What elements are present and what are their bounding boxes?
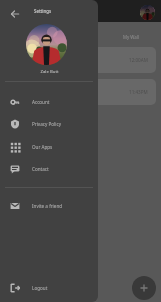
button[interactable]: Logout [0, 278, 98, 298]
button[interactable]: Privacy Policy [0, 114, 98, 134]
button[interactable]: Back [5, 4, 25, 24]
button[interactable]: Our Apps [0, 137, 98, 157]
staticText: Invite a friend [32, 203, 63, 209]
staticText: 11:43PM [129, 89, 148, 95]
button[interactable]: 12:00AM [50, 47, 156, 73]
staticText: Settings [34, 8, 52, 14]
staticText: Logout [32, 285, 48, 291]
staticText: Privacy Policy [32, 121, 61, 127]
staticText: Zale Butt [40, 68, 59, 74]
button[interactable]: My Wall [100, 28, 161, 45]
button[interactable]: Add [132, 276, 156, 300]
button[interactable]: 11:43PM [50, 79, 156, 105]
staticText: Account [32, 99, 50, 105]
button[interactable]: Invite a friend [0, 196, 98, 216]
staticText: My Wall [123, 34, 140, 40]
staticText: 12:00AM [129, 57, 148, 63]
button[interactable]: Profile [140, 5, 155, 20]
button[interactable]: Contact [0, 159, 98, 179]
staticText: Our Apps [32, 144, 53, 150]
button[interactable]: Account [0, 92, 98, 112]
staticText: Contact [32, 166, 49, 172]
